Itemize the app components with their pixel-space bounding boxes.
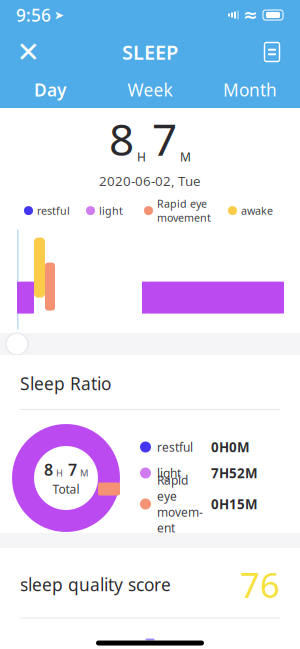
staticText: SLEEP: [122, 39, 178, 65]
staticText: H: [56, 467, 63, 479]
staticText: 9:56: [16, 3, 51, 26]
staticText: H: [137, 149, 146, 165]
button[interactable]: Week: [100, 74, 200, 108]
staticText: light: [157, 465, 181, 481]
staticText: ➤: [54, 8, 64, 22]
staticText: Day: [34, 78, 66, 101]
staticText: ≈: [243, 5, 258, 25]
staticText: 76: [240, 561, 280, 607]
staticText: Rapid eye movement: [157, 196, 211, 225]
button[interactable]: Report: [250, 30, 294, 74]
staticText: 8: [109, 109, 134, 168]
staticText: 22:34: [17, 334, 48, 349]
staticText: 0H0M: [211, 438, 250, 456]
button[interactable]: Month: [200, 74, 300, 108]
staticText: Rapid eye movement: [157, 472, 203, 536]
staticText: 7: [68, 459, 77, 480]
staticText: light: [99, 203, 123, 218]
staticText: 2020-06-02, Tue: [99, 172, 201, 190]
staticText: M: [180, 149, 191, 165]
staticText: Month: [223, 78, 277, 101]
staticText: M: [80, 467, 88, 479]
staticText: awake: [241, 203, 273, 218]
button[interactable]: Close: [6, 30, 50, 74]
staticText: 7: [152, 109, 177, 168]
staticText: restful: [157, 439, 193, 455]
staticText: restful: [37, 203, 70, 218]
staticText: 8: [44, 459, 53, 480]
staticText: sleep quality score: [20, 573, 171, 596]
staticText: ✕: [16, 36, 39, 68]
staticText: 0H15M: [211, 495, 258, 513]
button[interactable]: Day: [0, 74, 100, 108]
staticText: Week: [127, 78, 172, 101]
staticText: 7H52M: [211, 464, 258, 482]
staticText: Total: [52, 481, 79, 497]
staticText: Sleep Ratio: [20, 372, 111, 395]
